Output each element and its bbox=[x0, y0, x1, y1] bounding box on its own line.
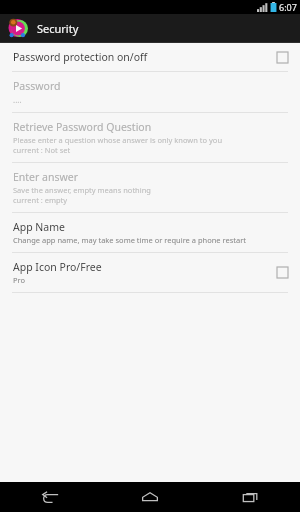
other: Toggle Password protection on/off bbox=[277, 52, 288, 63]
staticText: Please enter a question whose answer is … bbox=[13, 135, 223, 145]
button[interactable]: Enter answer bbox=[0, 163, 300, 212]
staticText: App Name bbox=[13, 220, 65, 234]
staticText: current : empty bbox=[13, 195, 68, 205]
staticText: App Icon Pro/Free bbox=[13, 260, 102, 274]
staticText: 6:07 bbox=[279, 1, 297, 13]
other: Toggle App Icon Pro/Free bbox=[277, 267, 288, 278]
button[interactable]: Password protection on/off bbox=[0, 43, 300, 71]
button[interactable]: Recent apps bbox=[200, 482, 300, 512]
staticText: current : Not set bbox=[13, 145, 71, 155]
staticText: Change app name, may take some time or r… bbox=[13, 235, 247, 245]
button[interactable]: Password bbox=[0, 72, 300, 112]
button[interactable]: App Icon Pro/Free bbox=[0, 253, 300, 292]
staticText: Save the answer, empty means nothing bbox=[13, 185, 151, 195]
button[interactable]: Home bbox=[100, 482, 200, 512]
staticText: .... bbox=[13, 94, 22, 105]
staticText: Password protection on/off bbox=[13, 50, 148, 64]
staticText: Enter answer bbox=[13, 170, 79, 184]
button[interactable]: App Name bbox=[0, 213, 300, 252]
staticText: Retrieve Password Question bbox=[13, 120, 152, 134]
button[interactable]: Back bbox=[0, 482, 100, 512]
staticText: Password bbox=[13, 79, 61, 93]
button[interactable]: Retrieve Password Question bbox=[0, 113, 300, 162]
staticText: Security bbox=[37, 21, 79, 36]
staticText: Pro bbox=[13, 275, 26, 285]
